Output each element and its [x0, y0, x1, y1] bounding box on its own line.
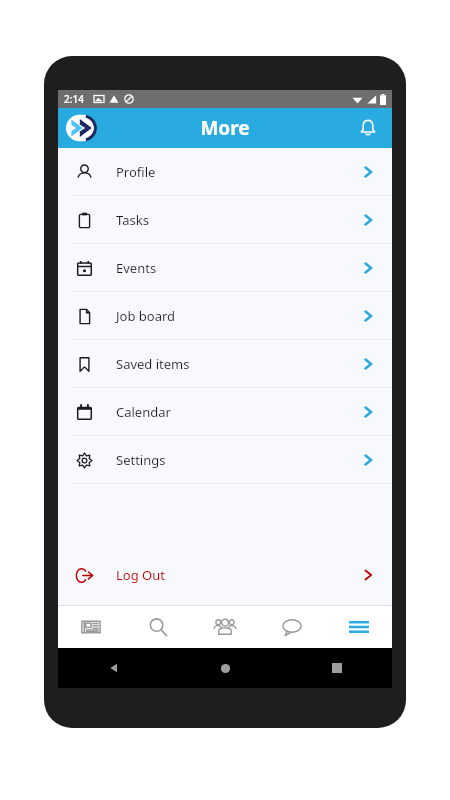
staticText: Tasks — [116, 211, 149, 229]
staticText: Settings — [116, 451, 166, 469]
staticText: Saved items — [116, 355, 190, 373]
button[interactable]: More — [325, 606, 392, 648]
staticText: More — [200, 115, 250, 141]
button[interactable]: Saved items — [58, 340, 392, 387]
button[interactable]: Search — [124, 606, 191, 648]
button[interactable]: Notifications — [354, 114, 382, 142]
staticText: Log Out — [116, 566, 165, 584]
staticText: Profile — [116, 163, 156, 181]
button[interactable]: Tasks — [58, 196, 392, 243]
button[interactable]: People — [191, 606, 258, 648]
button[interactable]: Job board — [58, 292, 392, 339]
button[interactable]: Profile — [58, 148, 392, 195]
button[interactable]: Calendar — [58, 388, 392, 435]
button[interactable]: Events — [58, 244, 392, 291]
button[interactable]: Messages — [258, 606, 325, 648]
button[interactable]: Recents — [281, 648, 392, 688]
staticText: 2:14 — [64, 92, 84, 106]
button[interactable]: Settings — [58, 436, 392, 483]
button[interactable]: Home — [170, 648, 281, 688]
button[interactable]: App logo — [66, 113, 96, 143]
button[interactable]: News — [58, 606, 124, 648]
staticText: Calendar — [116, 403, 171, 421]
button[interactable]: Back — [58, 648, 170, 688]
button[interactable]: Log Out — [58, 553, 392, 597]
staticText: Job board — [116, 307, 176, 325]
staticText: Events — [116, 259, 157, 277]
